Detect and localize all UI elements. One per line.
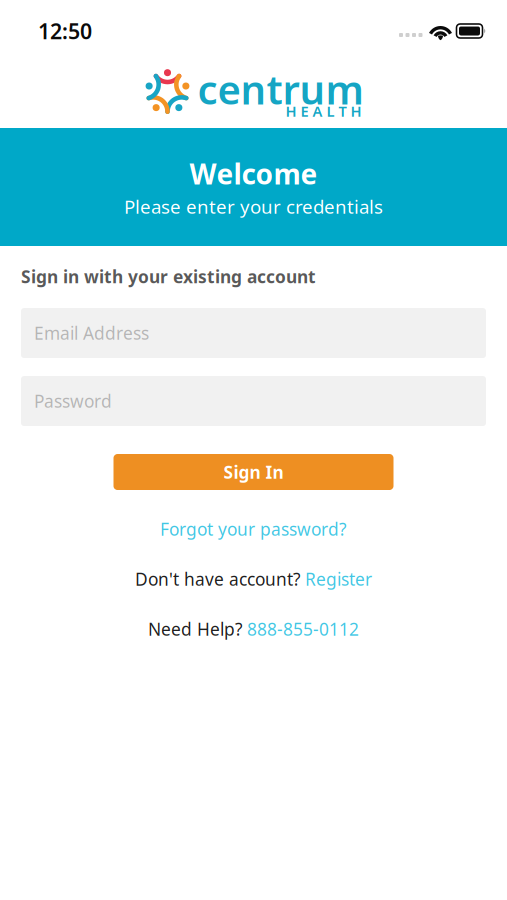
staticText: Please enter your credentials	[124, 194, 383, 219]
staticText: 12:50	[38, 17, 92, 45]
staticText: 888-855-0112	[247, 617, 359, 640]
staticText: Welcome	[189, 155, 317, 192]
button[interactable]: Forgot your password?	[21, 518, 486, 540]
staticText: Need Help?	[148, 617, 243, 640]
staticText: Email Address	[34, 321, 149, 344]
button[interactable]: Don't have account?	[21, 568, 486, 590]
staticText: Sign In	[223, 460, 283, 483]
staticText: Register	[305, 567, 372, 590]
staticText: Don't have account?	[135, 567, 301, 590]
button[interactable]: Need Help?	[21, 618, 486, 640]
button[interactable]: Sign In	[113, 454, 393, 490]
staticText: Password	[34, 389, 112, 412]
staticText: centrum	[197, 62, 363, 115]
staticText: Sign in with your existing account	[21, 265, 316, 288]
button[interactable]: Password	[21, 376, 486, 426]
button[interactable]: Email Address	[21, 308, 486, 358]
staticText: Forgot your password?	[160, 517, 347, 540]
staticText: H E A L T H	[285, 101, 361, 121]
